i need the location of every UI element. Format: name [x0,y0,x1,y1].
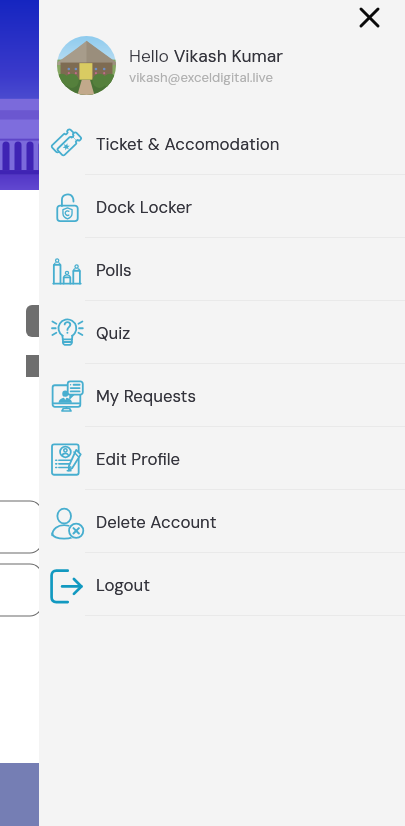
staticText: My Requests [96,385,196,407]
button[interactable]: Logout [39,553,405,616]
staticText: Logout [96,574,151,596]
button[interactable]: Polls [39,238,405,301]
staticText: Delete Account [96,511,217,533]
staticText: Delete Account [96,511,217,533]
button[interactable]: Quiz [39,301,405,364]
staticText: Polls [96,259,132,281]
button[interactable]: Dock Locker [39,175,405,238]
button[interactable]: Close drawer [355,3,383,31]
staticText: My Requests [96,385,196,407]
staticText: Hello Vikash Kumar [129,45,284,68]
staticText: Quiz [96,322,131,344]
staticText: Edit Profile [96,448,181,470]
staticText: Ticket & Accomodation [96,133,280,155]
button[interactable]: My Requests [39,364,405,427]
button[interactable]: Edit Profile [39,427,405,490]
staticText: Dock Locker [96,196,193,218]
button[interactable]: Delete Account [39,490,405,553]
staticText: Quiz [96,322,131,344]
staticText: Edit Profile [96,448,181,470]
staticText: Dock Locker [96,196,193,218]
staticText: vikash@exceldigital.live [129,69,273,86]
staticText: Hello Vikash Kumar [129,45,284,68]
staticText: Logout [96,574,151,596]
staticText: Ticket & Accomodation [96,133,280,155]
button[interactable]: Ticket & Accomodation [39,112,405,175]
staticText: Polls [96,259,132,281]
